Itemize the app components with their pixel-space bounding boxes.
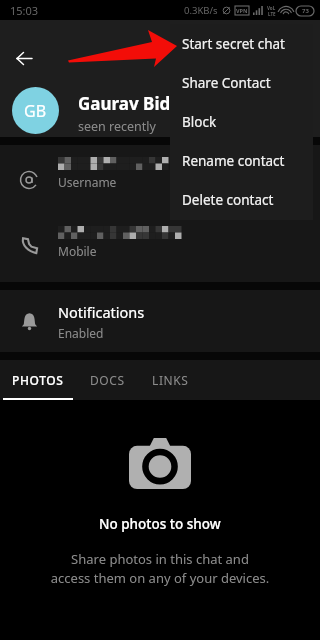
staticText: VPN: [236, 7, 248, 14]
button[interactable]: LINKS: [138, 360, 202, 400]
staticText: Rename contact: [182, 152, 285, 170]
button[interactable]: Share Contact: [170, 63, 313, 102]
button[interactable]: Delete contact: [170, 180, 313, 219]
staticText: LTE: [268, 11, 276, 17]
staticText: Share Contact: [182, 74, 271, 92]
button[interactable]: PHOTOS: [0, 360, 76, 400]
staticText: Share photos in this chat and access the…: [0, 550, 320, 587]
button[interactable]: DOCS: [76, 360, 138, 400]
staticText: 15:03: [10, 3, 39, 18]
staticText: Enabled: [58, 325, 104, 341]
staticText: Start secret chat: [182, 35, 285, 53]
button[interactable]: GB: [12, 87, 59, 134]
staticText: Block: [182, 113, 217, 131]
staticText: Mobile: [58, 243, 97, 259]
staticText: Delete contact: [182, 191, 274, 209]
staticText: No photos to show: [99, 515, 221, 533]
staticText: LINKS: [152, 372, 189, 388]
button[interactable]: Back: [7, 41, 41, 75]
staticText: 73: [302, 7, 309, 15]
staticText: DOCS: [90, 372, 125, 388]
button[interactable]: Notifications: [0, 290, 320, 352]
staticText: GB: [24, 100, 47, 122]
staticText: seen recently: [78, 118, 156, 135]
button[interactable]: Mobile: [0, 213, 320, 282]
button[interactable]: Rename contact: [170, 141, 313, 180]
staticText: 0.3KB/s: [184, 4, 218, 17]
staticText: Gaurav Bida: [78, 92, 181, 115]
button[interactable]: Start secret chat: [170, 24, 313, 63]
staticText: Username: [58, 174, 117, 190]
button[interactable]: Username: [0, 145, 320, 213]
button[interactable]: Block: [170, 102, 313, 141]
staticText: Notifications: [58, 302, 145, 322]
staticText: PHOTOS: [12, 372, 64, 388]
staticText: VoL: [267, 5, 276, 11]
